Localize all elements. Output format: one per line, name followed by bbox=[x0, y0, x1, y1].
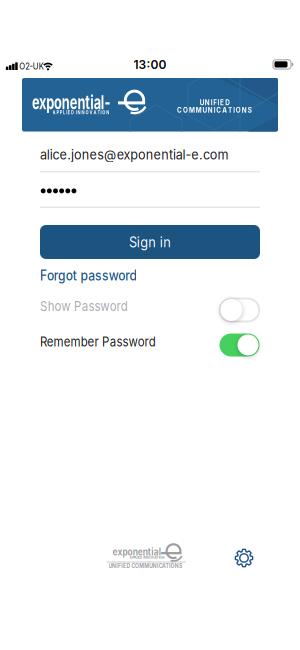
staticText: C O M M U N I C A T I O N S bbox=[170, 105, 258, 115]
staticText: UNIFIED COMMUNICATIONS bbox=[102, 562, 189, 569]
staticText: Sign in bbox=[126, 233, 174, 251]
staticText: O2-UK bbox=[17, 61, 46, 72]
staticText: alice.jones@exponential-e.com bbox=[40, 147, 234, 162]
button[interactable]: Settings bbox=[231, 545, 257, 571]
staticText: Show Password bbox=[40, 298, 143, 314]
button[interactable]: Remember Password bbox=[219, 333, 259, 356]
button[interactable]: Forgot password bbox=[40, 267, 153, 284]
staticText: Remember Password bbox=[40, 333, 176, 350]
button[interactable]: Show Password bbox=[220, 298, 259, 321]
button[interactable]: Sign in bbox=[40, 225, 260, 259]
staticText: APPLIED INNOVATION bbox=[126, 555, 167, 560]
staticText: exponential- bbox=[32, 91, 142, 113]
staticText: exponential- bbox=[112, 546, 175, 558]
staticText: A P P L I E D I N N O V A T I O N bbox=[45, 109, 116, 115]
staticText: U N I F I E D bbox=[197, 98, 232, 107]
staticText: Forgot password bbox=[40, 267, 153, 284]
staticText: 13:00 bbox=[133, 57, 166, 72]
